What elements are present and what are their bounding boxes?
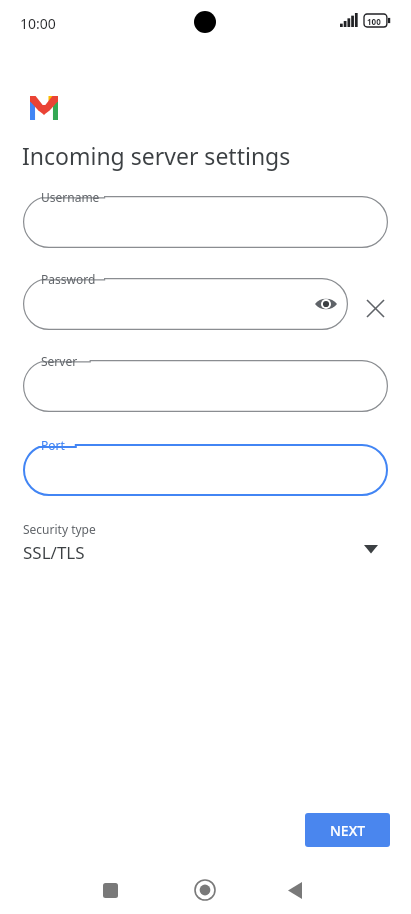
staticText: NEXT — [330, 821, 366, 840]
button[interactable]: Clear password — [359, 292, 391, 324]
button[interactable]: Port — [23, 444, 388, 496]
button[interactable]: Password — [23, 278, 348, 330]
button[interactable]: Username — [23, 196, 388, 248]
staticText: Security type — [23, 521, 96, 537]
staticText: Username — [41, 189, 100, 205]
staticText: SSL/TLS — [23, 541, 85, 564]
button[interactable]: Recent apps — [93, 873, 127, 907]
button[interactable]: NEXT — [305, 813, 390, 847]
staticText: Password — [41, 271, 96, 287]
button[interactable]: Home — [188, 873, 222, 907]
button[interactable]: Back — [278, 873, 312, 907]
button[interactable]: Security type — [16, 516, 395, 574]
staticText: 10:00 — [20, 14, 56, 33]
staticText: Incoming server settings — [22, 140, 291, 171]
staticText: 100 — [367, 16, 381, 27]
staticText: Server — [41, 353, 78, 369]
button[interactable]: Server — [23, 360, 388, 412]
staticText: Port — [41, 437, 65, 453]
button[interactable]: Show password — [310, 288, 342, 320]
